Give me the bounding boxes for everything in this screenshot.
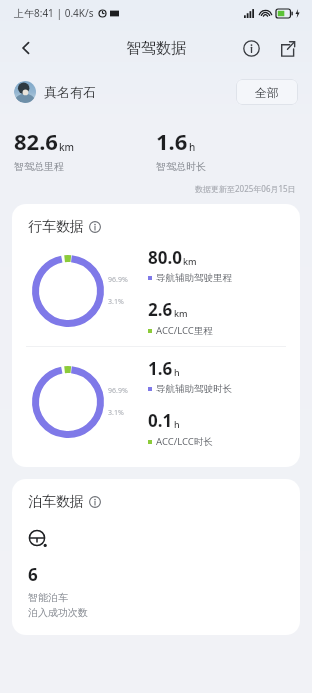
staticText: km [183,255,197,267]
staticText: 80.0 [148,246,182,269]
staticText: km [59,140,75,154]
staticText: 泊车数据 [28,493,84,511]
button[interactable]: 真名有石 [14,81,96,103]
staticText: | 0.4K/s [54,6,94,20]
staticText: 智能泊车 [28,591,68,604]
staticText: 导航辅助驾驶里程 [156,272,232,284]
staticText: 96.9% [108,386,128,396]
button[interactable]: Back [6,28,46,68]
staticText: 导航辅助驾驶时长 [156,383,232,395]
staticText: 82.6 [14,126,58,156]
staticText: 智驾总里程 [14,160,64,173]
staticText: 上午8:41 [14,6,54,20]
staticText: 泊入成功次数 [28,606,88,619]
button[interactable]: 行车数据 [12,204,300,467]
staticText: 数据更新至2025年06月15日 [195,183,296,194]
staticText: 96.9% [108,275,128,285]
staticText: ACC/LCC里程 [156,324,213,337]
staticText: 行车数据 [28,218,84,236]
button[interactable]: Share [270,31,304,65]
staticText: 1.6 [148,357,173,380]
staticText: 真名有石 [44,84,96,100]
staticText: 2.6 [148,298,173,321]
button[interactable]: 泊车数据 [12,479,300,635]
staticText: 0.1 [148,409,173,432]
button[interactable]: Info [234,31,268,65]
staticText: 1.6 [156,126,188,156]
staticText: h [189,140,196,154]
staticText: 智驾总时长 [156,160,206,173]
staticText: 3.1% [108,297,124,307]
staticText: ACC/LCC时长 [156,435,213,448]
staticText: km [174,307,188,319]
staticText: h [174,366,180,378]
staticText: h [174,418,180,430]
staticText: 智驾数据 [126,39,186,58]
staticText: 3.1% [108,408,124,418]
staticText: 全部 [255,85,279,100]
staticText: 6 [28,563,38,586]
button[interactable]: 全部 [236,79,298,105]
